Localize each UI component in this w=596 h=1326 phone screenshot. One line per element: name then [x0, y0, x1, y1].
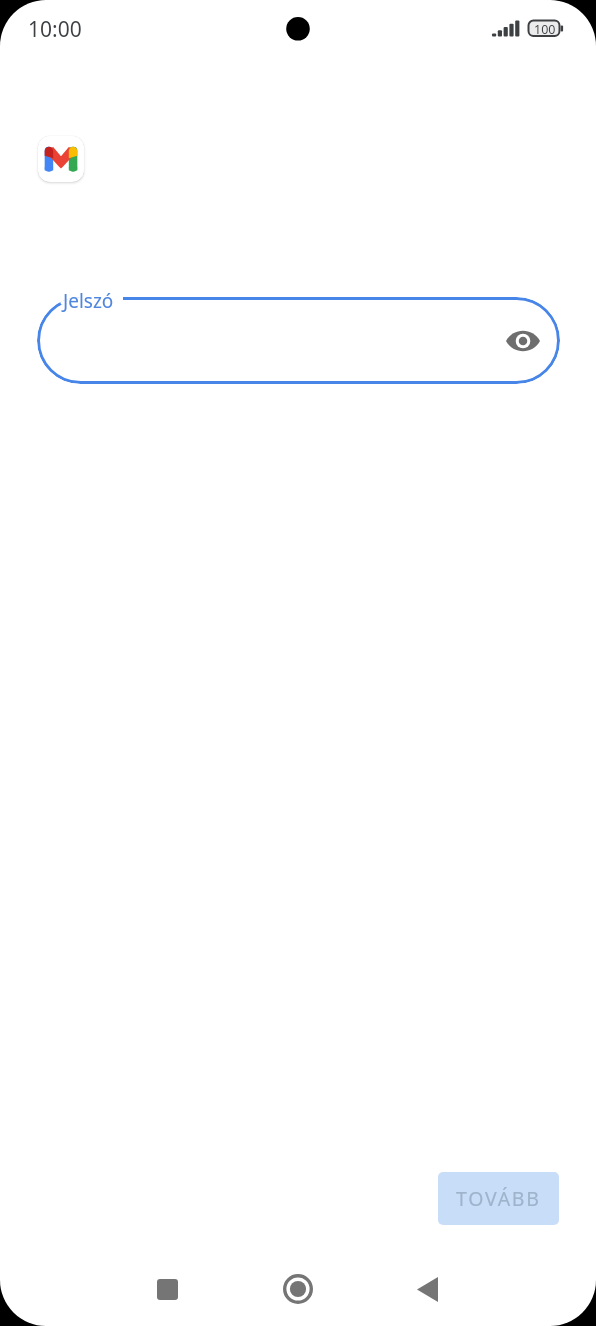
button[interactable]: Jelszó megjelenítése: [499, 317, 547, 365]
button[interactable]: Recents: [136, 1258, 198, 1320]
staticText: Jelszó: [63, 288, 114, 314]
staticText: TOVÁBB: [456, 1185, 541, 1212]
staticText: 100: [534, 21, 556, 38]
staticText: 10:00: [28, 15, 82, 44]
button[interactable]: TOVÁBB: [438, 1172, 559, 1225]
button[interactable]: Jelszó: [37, 297, 560, 384]
button[interactable]: Home: [267, 1258, 329, 1320]
button[interactable]: Back: [396, 1258, 458, 1320]
